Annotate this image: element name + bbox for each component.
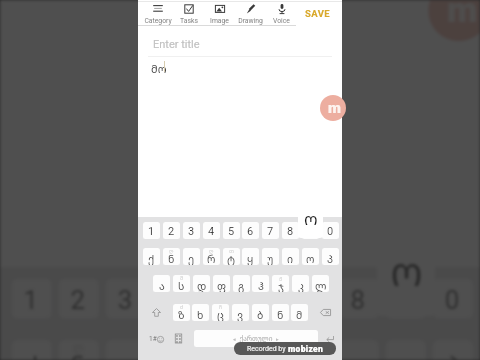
button[interactable]: შ: [173, 275, 190, 292]
staticText: 3: [188, 225, 195, 238]
button[interactable]: ლ: [312, 275, 329, 292]
button[interactable]: ღ: [153, 340, 193, 360]
button[interactable]: მ: [291, 304, 308, 321]
button[interactable]: 3: [183, 222, 200, 239]
staticText: 8: [287, 225, 294, 238]
staticText: m: [447, 0, 478, 32]
button[interactable]: 8: [282, 222, 299, 239]
button[interactable]: 7: [292, 279, 332, 319]
button[interactable]: 1: [12, 279, 52, 319]
staticText: ე: [188, 252, 195, 265]
button[interactable]: Voice: [266, 1, 297, 26]
button[interactable]: 0: [322, 222, 339, 239]
button[interactable]: Tasks: [173, 1, 204, 26]
button[interactable]: ყ: [245, 340, 285, 360]
button[interactable]: კ: [292, 275, 309, 292]
staticText: მ: [296, 308, 303, 321]
button[interactable]: ა: [153, 275, 170, 292]
button[interactable]: ვ: [232, 304, 249, 321]
staticText: ე: [118, 349, 134, 360]
staticText: კ: [298, 279, 304, 292]
button[interactable]: ღ: [203, 248, 220, 265]
button[interactable]: 9: [302, 222, 319, 239]
staticText: Tasks: [180, 17, 198, 25]
button[interactable]: Drawing: [235, 1, 266, 26]
staticText: ღ: [167, 340, 179, 354]
button[interactable]: უ: [262, 248, 279, 265]
button[interactable]: უ: [292, 340, 332, 360]
button[interactable]: ბ: [252, 304, 269, 321]
button[interactable]: Symbols: [142, 330, 170, 347]
button[interactable]: ღ: [59, 340, 99, 360]
staticText: ნ: [168, 252, 175, 265]
button[interactable]: ◂: [194, 330, 318, 347]
staticText: 0: [445, 286, 461, 316]
staticText: ▸: [276, 336, 279, 342]
button[interactable]: Image: [204, 1, 235, 26]
button[interactable]: ნ: [272, 304, 289, 321]
staticText: 5: [212, 286, 228, 316]
button[interactable]: Category: [142, 1, 173, 26]
button[interactable]: ი: [339, 340, 379, 360]
button[interactable]: 1: [143, 222, 160, 239]
staticText: დ: [197, 279, 207, 292]
staticText: ლ: [315, 279, 327, 292]
button[interactable]: პ: [322, 248, 339, 265]
button[interactable]: გ: [233, 275, 250, 292]
button[interactable]: 2: [163, 222, 180, 239]
staticText: Voice: [273, 17, 290, 25]
button[interactable]: ძ: [173, 304, 190, 321]
button[interactable]: ჟ: [272, 275, 289, 292]
staticText: მო: [151, 61, 167, 76]
button[interactable]: ი: [282, 248, 299, 265]
button[interactable]: ქ: [143, 248, 160, 265]
button[interactable]: ყ: [242, 248, 259, 265]
button[interactable]: Enter: [320, 330, 340, 347]
button[interactable]: 4: [153, 279, 193, 319]
button[interactable]: 6: [242, 222, 259, 239]
button[interactable]: 5: [200, 279, 240, 319]
button[interactable]: 7: [262, 222, 279, 239]
button[interactable]: SAVE: [296, 0, 340, 26]
button[interactable]: დ: [193, 275, 210, 292]
button[interactable]: Backspace: [310, 304, 341, 321]
button[interactable]: Keyboard settings: [171, 330, 186, 347]
button[interactable]: 2: [59, 279, 99, 319]
button[interactable]: პ: [433, 340, 473, 360]
staticText: Enter title: [153, 38, 200, 51]
button[interactable]: 5: [223, 222, 240, 239]
button[interactable]: თ: [200, 340, 240, 360]
button[interactable]: 3: [106, 279, 146, 319]
button[interactable]: ქ: [12, 340, 52, 360]
button[interactable]: ჩ: [212, 304, 229, 321]
staticText: ჰ: [258, 279, 264, 292]
button[interactable]: ო: [302, 248, 319, 265]
button[interactable]: ო: [386, 340, 426, 360]
button[interactable]: ღ: [163, 248, 180, 265]
staticText: 6: [247, 225, 254, 238]
staticText: პ: [445, 349, 461, 360]
button[interactable]: 6: [245, 279, 285, 319]
staticText: ი: [351, 349, 367, 360]
button[interactable]: 0: [433, 279, 473, 319]
button[interactable]: ხ: [192, 304, 209, 321]
button[interactable]: თ: [223, 248, 240, 265]
staticText: 3: [118, 286, 134, 316]
staticText: 1: [148, 225, 155, 238]
button[interactable]: ფ: [213, 275, 230, 292]
staticText: m: [328, 99, 341, 117]
staticText: 4: [165, 286, 181, 316]
staticText: უ: [303, 349, 320, 360]
button[interactable]: 9: [386, 279, 426, 319]
button[interactable]: 4: [203, 222, 220, 239]
button[interactable]: 8: [339, 279, 379, 319]
staticText: 7: [303, 286, 320, 316]
button[interactable]: ე: [183, 248, 200, 265]
button[interactable]: ე: [106, 340, 146, 360]
button[interactable]: ჰ: [252, 275, 269, 292]
button[interactable]: Shift: [142, 304, 171, 321]
staticText: 0: [327, 225, 334, 238]
